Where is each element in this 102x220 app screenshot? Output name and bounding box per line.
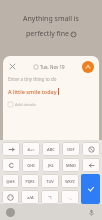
button[interactable]: #+= xyxy=(22,142,40,156)
staticText: WXYZ xyxy=(65,179,75,184)
button[interactable]: A little smile today xyxy=(8,88,94,95)
staticText: a/A xyxy=(27,195,34,200)
staticText: JKL xyxy=(48,163,54,168)
staticText: A little smile today xyxy=(8,88,57,95)
staticText: TUV xyxy=(46,179,54,184)
staticText: @#$ xyxy=(6,179,15,184)
button[interactable]: TUV xyxy=(41,174,59,188)
button[interactable]: WXYZ xyxy=(61,174,79,188)
staticText: MNO xyxy=(66,163,76,168)
button[interactable]: Close xyxy=(8,62,17,71)
staticText: perfectly fine xyxy=(26,29,71,39)
staticText: PQRS xyxy=(25,179,35,184)
staticText: ABC xyxy=(47,147,55,152)
button[interactable]: PQRS xyxy=(21,174,39,188)
button[interactable]: Add details xyxy=(8,102,36,107)
staticText: '"( xyxy=(48,195,52,200)
button[interactable]: Home xyxy=(6,208,15,217)
staticText: Anything small is xyxy=(23,14,79,24)
button[interactable]: Voice input xyxy=(86,207,96,217)
staticText: DEF xyxy=(67,147,75,152)
staticText: Add details xyxy=(15,102,36,107)
button[interactable]: Emoji xyxy=(2,190,19,204)
button[interactable]: Settings xyxy=(82,142,100,156)
staticText: #+= xyxy=(27,147,35,152)
staticText: GHI xyxy=(27,163,35,168)
button[interactable]: ABC xyxy=(42,142,60,156)
button[interactable]: a/A xyxy=(21,190,39,204)
button[interactable]: Delete xyxy=(82,158,100,172)
button[interactable]: . , xyxy=(61,190,79,204)
button[interactable]: @#$ xyxy=(2,174,19,188)
staticText: . , xyxy=(68,195,72,200)
button[interactable]: DEF xyxy=(62,142,80,156)
button[interactable]: Profile xyxy=(82,61,94,73)
button[interactable]: Undo xyxy=(2,158,20,172)
button[interactable]: JKL xyxy=(42,158,60,172)
staticText: Tue, Nov 19 xyxy=(40,64,65,70)
button[interactable]: GHI xyxy=(22,158,40,172)
staticText: Enter a tiny thing to do xyxy=(8,76,57,82)
button[interactable]: Tab xyxy=(2,142,20,156)
button[interactable]: Enter xyxy=(81,174,100,204)
button[interactable]: MNO xyxy=(62,158,80,172)
button[interactable]: '"( xyxy=(41,190,59,204)
